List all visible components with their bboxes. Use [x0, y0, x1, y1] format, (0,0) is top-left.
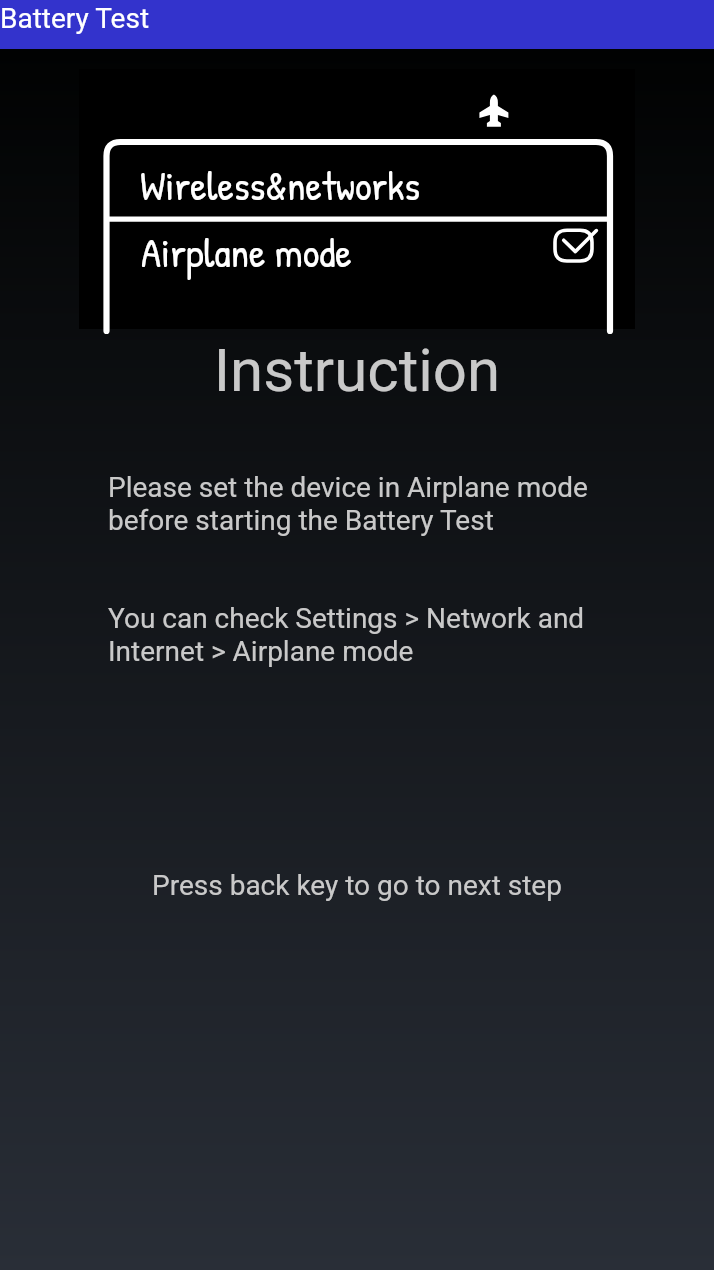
staticText: Press back key to go to next step	[0, 869, 714, 902]
button[interactable]: Wireless&networks	[107, 145, 610, 217]
other: Airplane mode setting illustration	[79, 69, 635, 329]
staticText: Instruction	[0, 335, 714, 405]
staticText: Please set the device in Airplane mode b…	[108, 471, 616, 537]
staticText: You can check Settings > Network and Int…	[108, 602, 616, 668]
staticText: Wireless&networks	[140, 157, 421, 213]
button[interactable]: Airplane mode, checked	[107, 222, 610, 282]
staticText: Battery Test	[0, 2, 150, 35]
button[interactable]: Battery Test	[0, 0, 714, 49]
staticText: Airplane mode	[141, 224, 352, 280]
